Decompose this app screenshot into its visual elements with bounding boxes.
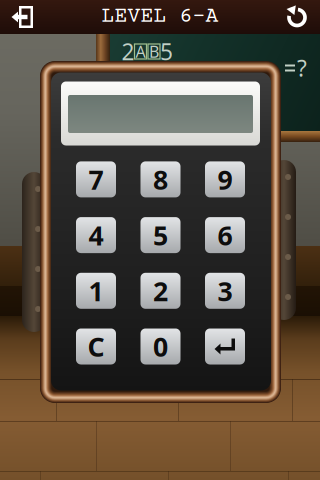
staticText: B [149,41,159,62]
staticText: 4 [88,217,103,253]
staticText: C [87,329,104,364]
button[interactable]: 3 [205,273,245,309]
button[interactable]: 5 [140,217,180,253]
button[interactable]: 1 [76,273,116,309]
staticText: 2 [153,273,168,308]
button[interactable]: 2 [140,273,180,309]
button[interactable]: 9 [205,161,245,197]
button[interactable]: 7 [76,161,116,197]
staticText: 6 [217,217,232,253]
button[interactable]: Restart level [274,0,320,34]
staticText: 1 [88,273,103,308]
staticText: 5 [160,36,173,66]
staticText: 2 [121,36,134,66]
button[interactable]: 4 [76,217,116,253]
staticText: 7 [88,162,103,197]
button[interactable]: 6 [205,217,245,253]
staticText: 0 [153,329,168,364]
staticText: ? [297,53,307,83]
staticText: A [135,41,145,62]
button[interactable]: C [76,328,116,364]
staticText: LEVEL 6-A [101,5,218,29]
staticText: 3 [217,273,232,308]
button[interactable]: 0 [140,328,180,364]
staticText: 5 [153,217,168,253]
staticText: 9 [217,162,232,197]
button[interactable]: Exit level [0,0,46,34]
button[interactable]: 8 [140,161,180,197]
staticText: 8 [153,162,168,197]
button[interactable] [205,328,245,364]
